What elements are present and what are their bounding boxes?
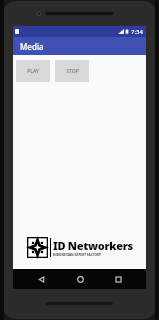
staticText: 7:34	[131, 28, 143, 36]
button[interactable]: ID Networkers	[27, 237, 133, 258]
staticText: ID Networkers	[53, 238, 133, 253]
button[interactable]: Back	[31, 269, 51, 289]
button[interactable]: Media	[13, 37, 146, 55]
button[interactable]: PLAY	[16, 60, 50, 82]
button[interactable]: Recents	[108, 269, 128, 289]
button[interactable]: Home	[70, 269, 90, 289]
staticText: STOP	[66, 68, 79, 75]
staticText: INDONESIAN EXPERT FACTORY	[53, 253, 102, 257]
staticText: Media	[20, 41, 44, 52]
button[interactable]: STOP	[55, 60, 89, 82]
staticText: PLAY	[27, 68, 39, 75]
